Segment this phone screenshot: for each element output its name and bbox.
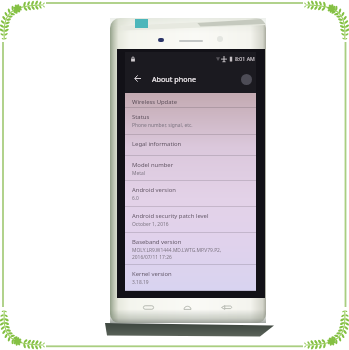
button[interactable]: Recent apps — [142, 303, 155, 312]
button[interactable]: Android version — [125, 181, 256, 207]
staticText: Android security patch level — [132, 212, 209, 220]
staticText: About phone — [152, 74, 196, 84]
button[interactable]: Kernel version — [125, 265, 256, 291]
button[interactable]: Baseband version — [125, 233, 256, 265]
staticText: 8:01 AM — [235, 55, 255, 62]
button[interactable]: Model number — [125, 156, 256, 181]
button[interactable]: Navigate up — [130, 71, 145, 86]
staticText: Legal information — [132, 140, 182, 148]
button[interactable]: Android security patch level — [125, 207, 256, 233]
staticText: Metal — [132, 170, 145, 177]
staticText: Model number — [132, 161, 174, 169]
staticText: Status — [132, 113, 150, 121]
staticText: Wireless Update — [132, 98, 177, 106]
staticText: 6.0 — [132, 195, 139, 202]
staticText: October 1, 2016 — [132, 221, 169, 228]
button[interactable]: Home — [181, 303, 194, 312]
button[interactable]: Status — [125, 108, 256, 135]
button[interactable]: Search — [241, 74, 252, 85]
button[interactable]: Legal information — [125, 135, 256, 156]
staticText: Phone number, signal, etc. — [132, 122, 193, 129]
staticText: 3.18.19 — [132, 279, 149, 286]
staticText: Android version — [132, 186, 176, 194]
staticText: Baseband version — [132, 238, 182, 246]
button[interactable]: Back — [220, 303, 233, 312]
button[interactable]: Wireless Update — [125, 93, 256, 108]
staticText: MOLY.LR9.W1444.MD.LWTG.MP.V79.P2, 2016/0… — [132, 247, 222, 260]
staticText: Kernel version — [132, 270, 172, 278]
